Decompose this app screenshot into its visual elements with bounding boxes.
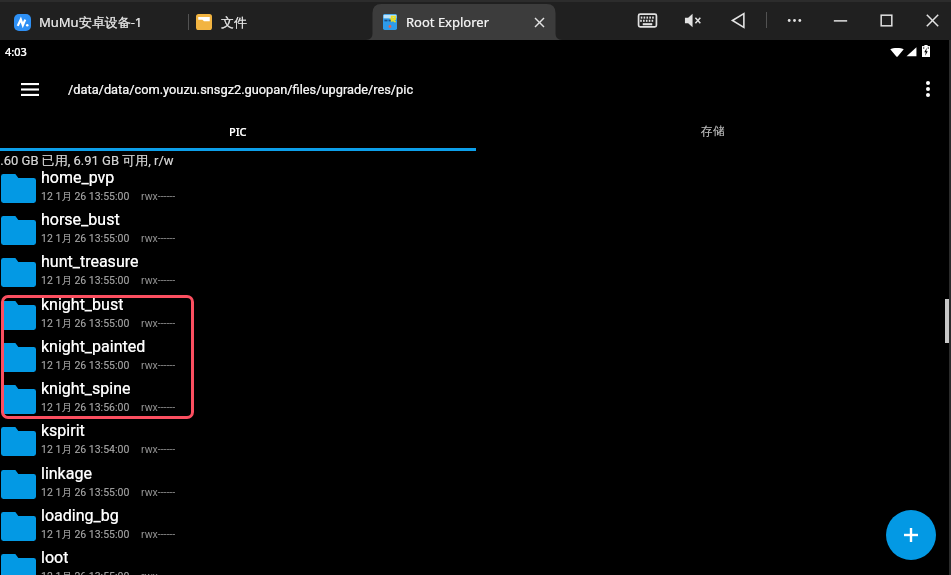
button[interactable]: knight_bust bbox=[0, 297, 951, 339]
button[interactable]: knight_painted bbox=[0, 339, 951, 381]
button[interactable]: 文件 bbox=[196, 4, 247, 40]
staticText: horse_bust bbox=[41, 210, 120, 229]
staticText: 3.60 GB 已用, 6.91 GB 可用, r/w bbox=[0, 152, 174, 168]
button[interactable]: knight_spine bbox=[0, 381, 951, 423]
staticText: hunt_treasure bbox=[41, 252, 139, 271]
button[interactable]: Root Explorer bbox=[366, 4, 562, 40]
button[interactable]: 存储 bbox=[475, 111, 951, 151]
staticText: rwx------ bbox=[141, 317, 176, 329]
staticText: 12 1月 26 13:55:00 bbox=[41, 359, 130, 372]
button[interactable]: MuMu安卓设备-1 bbox=[14, 4, 143, 40]
staticText: loading_bg bbox=[41, 506, 119, 525]
staticText: rwx------ bbox=[141, 486, 176, 498]
staticText: PIC bbox=[229, 124, 247, 139]
button[interactable]: loading_bg bbox=[0, 508, 951, 550]
button[interactable]: Add bbox=[886, 510, 936, 560]
staticText: rwx------ bbox=[141, 190, 176, 202]
staticText: 12 1月 26 13:55:00 bbox=[41, 317, 130, 330]
staticText: knight_spine bbox=[41, 379, 131, 398]
button[interactable]: More bbox=[771, 2, 817, 38]
staticText: MuMu安卓设备-1 bbox=[39, 13, 143, 31]
button[interactable]: Maximize bbox=[863, 2, 909, 38]
staticText: rwx------ bbox=[141, 359, 176, 371]
staticText: kspirit bbox=[41, 421, 85, 440]
staticText: home_pvp bbox=[41, 168, 115, 187]
button[interactable]: Back bbox=[716, 2, 762, 38]
staticText: 12 1月 26 13:54:00 bbox=[41, 443, 130, 456]
staticText: 12 1月 26 13:56:00 bbox=[41, 401, 130, 414]
button[interactable]: PIC bbox=[0, 111, 475, 151]
staticText: 存储 bbox=[701, 124, 725, 139]
staticText: 12 1月 26 13:55:00 bbox=[41, 190, 130, 203]
staticText: 12 1月 26 13:55:00 bbox=[41, 274, 130, 287]
button[interactable]: loot bbox=[0, 550, 951, 575]
staticText: knight_bust bbox=[41, 295, 124, 314]
staticText: rwx------ bbox=[141, 232, 176, 244]
staticText: knight_painted bbox=[41, 337, 146, 356]
staticText: 12 1月 26 13:55:00 bbox=[41, 486, 130, 499]
staticText: 12 1月 26 13:55:00 bbox=[41, 232, 130, 245]
staticText: 12 1月 26 13:55:00 bbox=[41, 528, 130, 541]
button[interactable]: kspirit bbox=[0, 423, 951, 465]
button[interactable]: Mute bbox=[670, 2, 716, 38]
button[interactable]: Keyboard bbox=[624, 2, 670, 38]
staticText: Root Explorer bbox=[406, 13, 490, 31]
staticText: rwx------ bbox=[141, 528, 176, 540]
staticText: rwx------ bbox=[141, 274, 176, 286]
staticText: rwx------ bbox=[141, 401, 176, 413]
button[interactable]: linkage bbox=[0, 466, 951, 508]
staticText: rwx------ bbox=[141, 443, 176, 455]
button[interactable]: Minimize bbox=[817, 2, 863, 38]
button[interactable]: hunt_treasure bbox=[0, 254, 951, 296]
staticText: linkage bbox=[41, 464, 92, 483]
staticText: rwx------ bbox=[141, 570, 176, 575]
staticText: loot bbox=[41, 548, 69, 567]
button[interactable]: Menu bbox=[7, 66, 53, 112]
staticText: 文件 bbox=[221, 14, 247, 30]
staticText: 4:03 bbox=[5, 44, 27, 59]
button[interactable]: More options bbox=[905, 66, 951, 112]
button[interactable]: Close tab bbox=[527, 10, 551, 34]
button[interactable]: home_pvp bbox=[0, 170, 951, 212]
button[interactable]: horse_bust bbox=[0, 212, 951, 254]
staticText: /data/data/com.youzu.snsgz2.guopan/files… bbox=[68, 82, 414, 97]
staticText: 12 1月 26 13:55:00 bbox=[41, 570, 130, 575]
button[interactable]: Close bbox=[909, 2, 951, 38]
